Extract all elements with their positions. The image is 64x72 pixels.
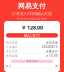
button[interactable]: 支付方式 [6,49,58,54]
staticText: 网易支付 [18,2,46,10]
staticText: 订单支付详情确认页面 [12,11,52,16]
staticText: 商品名称 [6,41,18,44]
button[interactable]: 备注 [6,64,58,69]
button[interactable]: 确认支付 [6,33,58,38]
staticText: 支付方式 [6,50,18,53]
staticText: 会员充值 [46,41,58,44]
staticText: 查看更多 [26,60,38,63]
button[interactable]: 查看更多 [11,60,53,63]
staticText: 确认支付 [24,33,40,38]
staticText: 优惠金额 [6,54,18,57]
staticText: ￥ 128.00 [21,24,43,31]
button[interactable]: 订单编号 [6,45,58,49]
staticText: 无 [55,65,58,68]
staticText: -￥10.00 [45,54,58,58]
staticText: 余额支付 [46,50,58,53]
staticText: 安全支付由网易宝提供 [17,17,47,20]
button[interactable]: 优惠金额 [6,54,58,58]
staticText: 20240613 [42,45,58,49]
staticText: 备注 [6,65,12,68]
staticText: 订单编号 [6,45,18,49]
button[interactable]: 商品名称 [6,41,58,45]
